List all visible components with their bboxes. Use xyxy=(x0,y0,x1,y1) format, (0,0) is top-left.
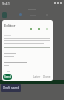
staticText: Send xyxy=(4,75,12,79)
staticText: Editor xyxy=(4,23,16,28)
staticText: Done xyxy=(43,75,51,79)
button[interactable]: Later xyxy=(33,75,41,79)
button[interactable]: Draft saved xyxy=(1,84,21,92)
staticText: 9:41 xyxy=(2,1,10,6)
staticText: Later xyxy=(33,75,41,79)
button[interactable]: Send xyxy=(3,74,12,80)
button[interactable]: Done xyxy=(43,75,51,79)
button[interactable]: App icon xyxy=(2,12,7,18)
staticText: Draft saved xyxy=(3,86,20,90)
